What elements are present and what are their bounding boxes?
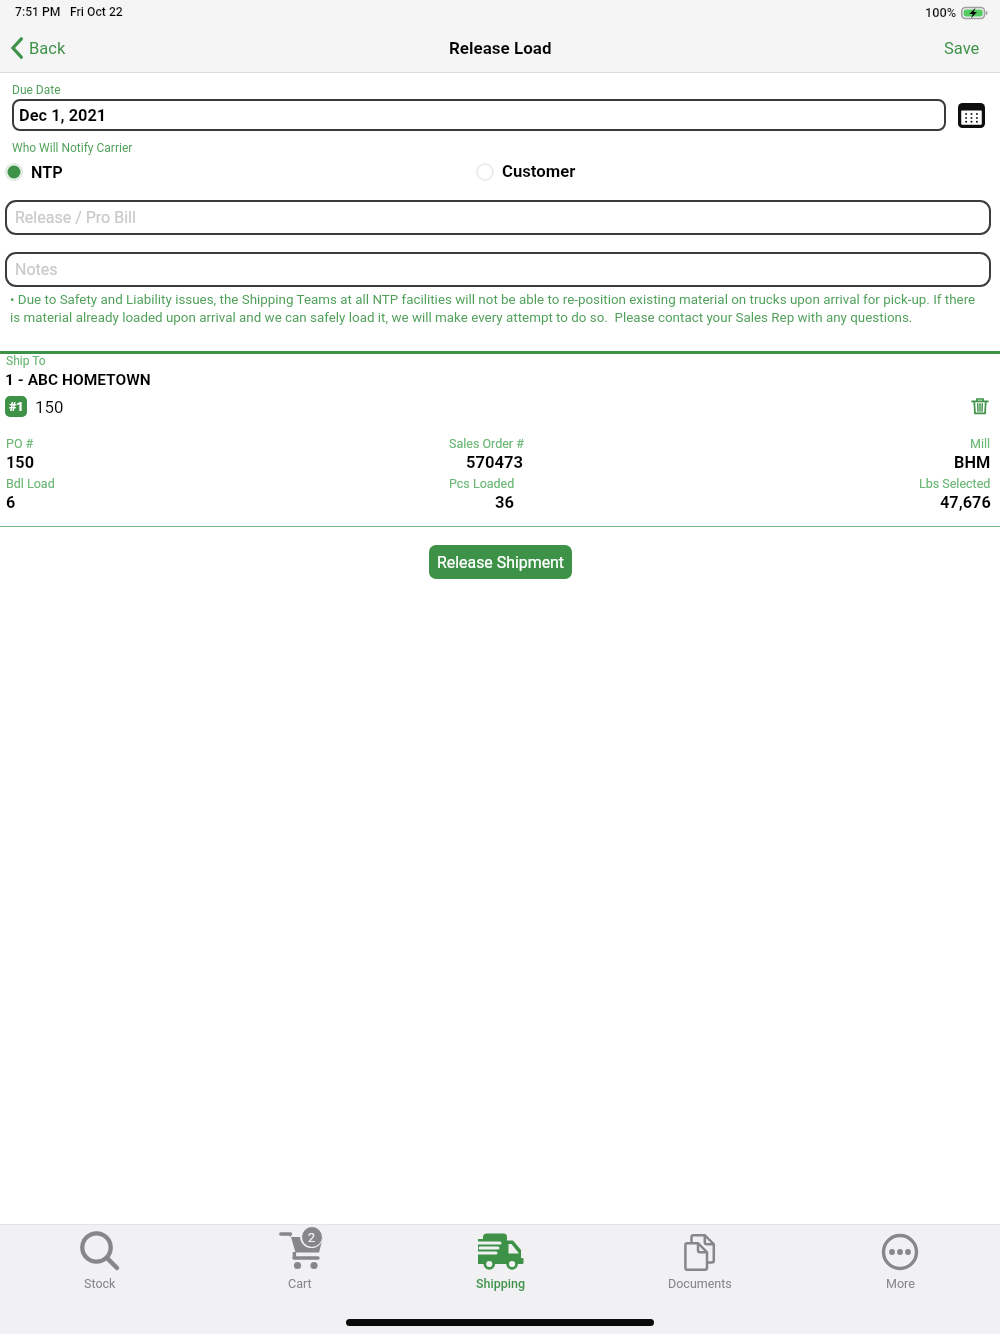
staticText: PO # — [6, 436, 34, 451]
staticText: Release Load — [449, 38, 552, 58]
button[interactable]: Release / Pro Bill — [5, 200, 991, 235]
staticText: Who Will Notify Carrier — [12, 141, 133, 155]
button[interactable]: Customer — [476, 159, 588, 185]
staticText: Sales Order # — [449, 436, 524, 451]
button[interactable]: Release Shipment — [429, 545, 572, 579]
staticText: Ship To — [6, 354, 46, 368]
staticText: 100% — [925, 5, 957, 20]
staticText: 6 — [6, 493, 16, 512]
button[interactable]: Shipping — [400, 1224, 600, 1296]
button[interactable]: Stock — [0, 1224, 200, 1296]
staticText: Release Shipment — [437, 553, 565, 572]
staticText: Due Date — [12, 83, 61, 97]
staticText: Stock — [84, 1276, 116, 1291]
staticText: More — [886, 1276, 915, 1291]
staticText: Release / Pro Bill — [15, 208, 136, 227]
staticText: Pcs Loaded — [449, 476, 515, 491]
staticText: 150 — [6, 453, 35, 472]
staticText: 1 - ABC HOMETOWN — [5, 371, 151, 389]
staticText: 7:51 PM — [15, 5, 61, 19]
staticText: 570473 — [466, 453, 524, 472]
button[interactable]: More — [800, 1224, 1000, 1296]
staticText: Customer — [502, 162, 576, 182]
button[interactable]: Documents — [600, 1224, 800, 1296]
staticText: Notes — [15, 260, 58, 279]
staticText: 150 — [35, 397, 64, 417]
staticText: 47,676 — [940, 493, 991, 512]
button[interactable]: Pick date — [958, 103, 985, 128]
staticText: Documents — [668, 1276, 732, 1291]
staticText: Lbs Selected — [919, 476, 991, 491]
button[interactable]: NTP — [0, 159, 75, 185]
staticText: Fri Oct 22 — [70, 5, 123, 19]
staticText: #1 — [9, 399, 24, 414]
staticText: Cart — [288, 1276, 312, 1291]
button[interactable]: Notes — [5, 252, 991, 287]
button[interactable]: Back — [0, 38, 74, 58]
staticText: Mill — [970, 436, 991, 451]
button[interactable]: Dec 1, 2021 — [12, 99, 946, 131]
button[interactable]: Save — [931, 33, 1000, 64]
staticText: Back — [29, 39, 66, 58]
staticText: Dec 1, 2021 — [19, 106, 107, 125]
button[interactable]: 2 — [200, 1224, 400, 1296]
staticText: • Due to Safety and Liability issues, th… — [10, 292, 982, 325]
staticText: BHM — [954, 453, 991, 472]
staticText: Shipping — [476, 1276, 525, 1291]
button[interactable]: Delete — [971, 397, 989, 417]
staticText: Save — [944, 39, 980, 58]
staticText: 2 — [308, 1230, 316, 1245]
staticText: NTP — [31, 163, 63, 182]
staticText: 36 — [495, 493, 515, 512]
staticText: Bdl Load — [6, 476, 55, 491]
